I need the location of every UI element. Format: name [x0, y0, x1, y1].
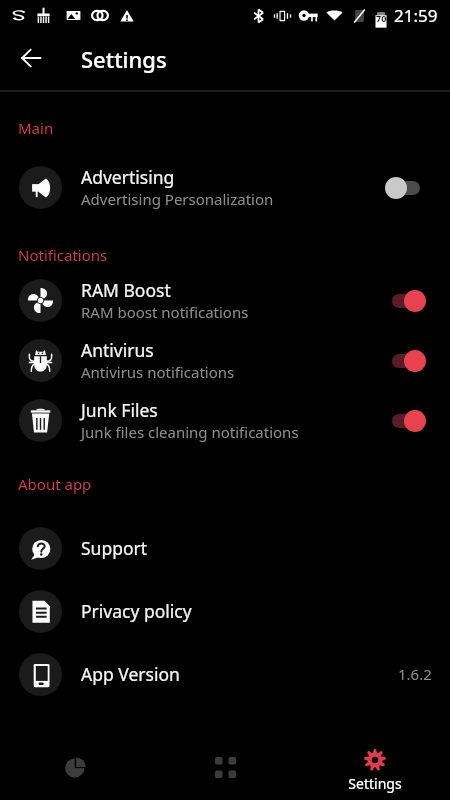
button[interactable]: App Version — [0, 643, 450, 705]
staticText: App Version — [81, 662, 180, 686]
staticText: Support — [81, 536, 148, 560]
button[interactable]: Privacy policy — [0, 580, 450, 642]
staticText: Settings — [81, 44, 167, 74]
button[interactable]: Toggle off — [384, 170, 432, 204]
staticText: About app — [18, 474, 92, 494]
button[interactable]: RAM Boost — [0, 270, 450, 330]
staticText: Advertising — [81, 165, 175, 189]
staticText: RAM Boost — [81, 278, 171, 302]
staticText: 70 — [376, 12, 387, 24]
button[interactable]: Support — [0, 517, 450, 579]
button[interactable]: Junk Files — [0, 390, 450, 450]
staticText: Advertising Personalization — [81, 189, 274, 209]
button[interactable]: Antivirus — [0, 330, 450, 390]
button[interactable]: Toggle on — [384, 283, 432, 317]
staticText: Settings — [348, 774, 402, 793]
button[interactable]: Toggle on — [384, 403, 432, 437]
staticText: Notifications — [18, 245, 108, 265]
button[interactable]: Statistics — [0, 722, 150, 800]
staticText: Main — [18, 118, 54, 138]
button[interactable]: Apps — [150, 722, 300, 800]
staticText: Junk files cleaning notifications — [81, 422, 299, 442]
button[interactable]: Back — [9, 36, 53, 80]
button[interactable]: Advertising — [0, 159, 450, 215]
staticText: Junk Files — [81, 398, 158, 422]
button[interactable]: Toggle on — [384, 343, 432, 377]
button[interactable]: Settings — [300, 722, 450, 800]
staticText: Antivirus notifications — [81, 362, 235, 382]
staticText: 21:59 — [394, 4, 438, 27]
staticText: 1.6.2 — [398, 664, 432, 684]
staticText: Privacy policy — [81, 599, 192, 623]
staticText: RAM boost notifications — [81, 302, 249, 322]
staticText: Antivirus — [81, 338, 154, 362]
